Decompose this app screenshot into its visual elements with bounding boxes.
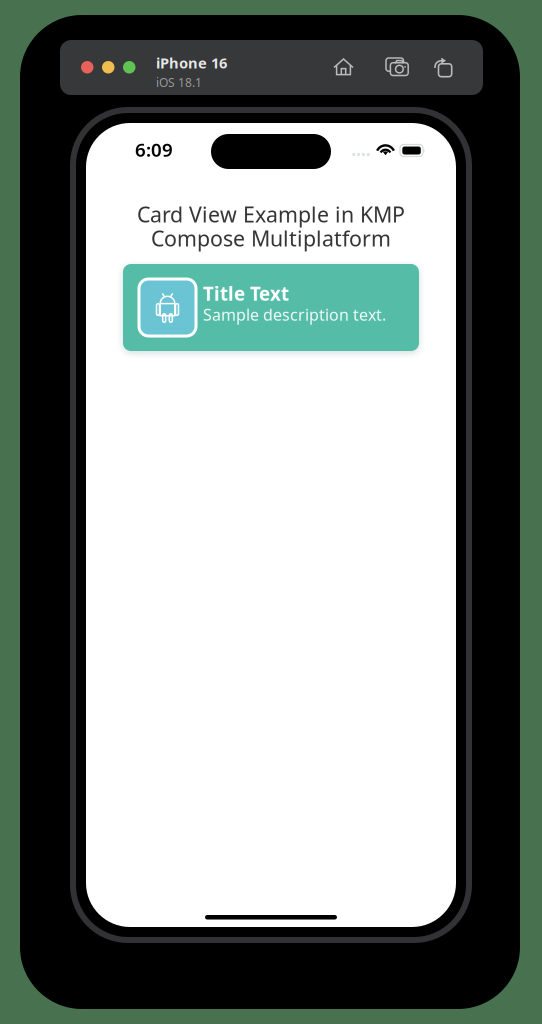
staticText: Card View Example in KMP — [137, 200, 405, 228]
button[interactable]: Screenshot — [386, 58, 409, 77]
button[interactable]: Rotate — [434, 57, 452, 77]
button[interactable]: Minimize — [102, 61, 114, 73]
button[interactable]: Home — [333, 57, 354, 77]
button[interactable]: Title Text — [123, 264, 419, 351]
button[interactable]: Close — [81, 61, 93, 73]
staticText: Title Text — [203, 281, 289, 306]
staticText: iOS 18.1 — [156, 74, 202, 90]
staticText: iPhone 16 — [156, 53, 227, 72]
staticText: 6:09 — [135, 137, 173, 162]
button[interactable]: Zoom — [123, 61, 135, 73]
staticText: Compose Multiplatform — [151, 224, 391, 252]
staticText: Sample description text. — [203, 304, 386, 325]
